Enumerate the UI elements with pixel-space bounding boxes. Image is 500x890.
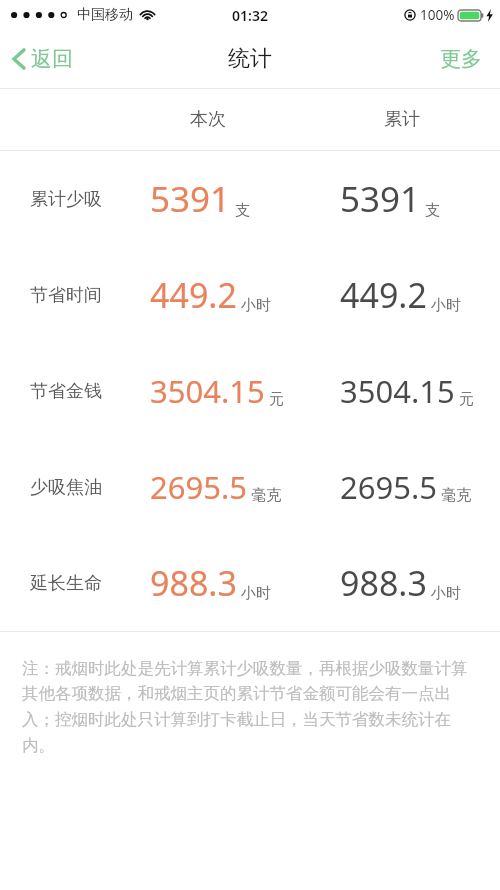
staticText: 5391 — [340, 175, 421, 223]
button[interactable]: 少吸焦油 — [0, 439, 500, 535]
staticText: 小时 — [431, 584, 461, 603]
staticText: 本次 — [190, 108, 226, 131]
staticText: 小时 — [241, 296, 271, 315]
staticText: 毫克 — [441, 486, 471, 505]
staticText: 注：戒烟时此处是先计算累计少吸数量，再根据少吸数量计算其他各项数据，和戒烟主页的… — [22, 658, 482, 756]
staticText: 2695.5 — [150, 466, 247, 508]
staticText: 节省时间 — [30, 284, 102, 307]
staticText: 3504.15 — [340, 370, 455, 412]
staticText: 中国移动 — [77, 6, 133, 24]
staticText: 支 — [235, 201, 250, 220]
staticText: 累计 — [384, 108, 420, 131]
staticText: 小时 — [431, 296, 461, 315]
staticText: 统计 — [228, 45, 272, 73]
button[interactable]: 延长生命 — [0, 535, 500, 631]
staticText: 更多 — [440, 46, 482, 72]
staticText: 元 — [459, 390, 474, 409]
staticText: 支 — [425, 201, 440, 220]
staticText: 449.2 — [150, 272, 237, 318]
staticText: 449.2 — [340, 272, 427, 318]
staticText: 3504.15 — [150, 370, 265, 412]
button[interactable]: 返回 — [0, 38, 87, 80]
button[interactable]: 更多 — [422, 36, 500, 82]
staticText: 小时 — [241, 584, 271, 603]
staticText: 毫克 — [251, 486, 281, 505]
staticText: 2695.5 — [340, 466, 437, 508]
staticText: 988.3 — [340, 560, 427, 606]
button[interactable]: 节省时间 — [0, 247, 500, 343]
staticText: 少吸焦油 — [30, 476, 102, 499]
button[interactable]: 节省金钱 — [0, 343, 500, 439]
staticText: 元 — [269, 390, 284, 409]
staticText: 100% — [420, 6, 455, 24]
staticText: 累计少吸 — [30, 188, 102, 211]
staticText: 节省金钱 — [30, 380, 102, 403]
staticText: 延长生命 — [30, 572, 102, 595]
button[interactable]: 累计少吸 — [0, 151, 500, 247]
staticText: 01:32 — [232, 6, 268, 25]
staticText: 5391 — [150, 175, 231, 223]
staticText: 返回 — [31, 46, 73, 72]
staticText: 988.3 — [150, 560, 237, 606]
